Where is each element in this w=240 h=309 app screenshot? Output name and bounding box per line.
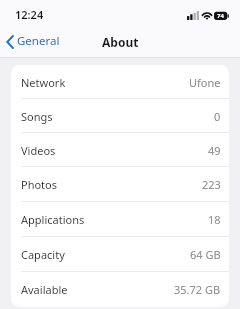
staticText: 0 (214, 109, 221, 124)
button[interactable]: Applications (11, 202, 229, 237)
staticText: General (17, 33, 60, 49)
staticText: Videos (21, 143, 56, 158)
button[interactable]: Available (11, 272, 229, 307)
staticText: 18 (208, 212, 221, 227)
staticText: Photos (21, 177, 58, 192)
button[interactable]: Capacity (11, 237, 229, 272)
staticText: 64 GB (190, 247, 221, 262)
staticText: 223 (202, 177, 221, 192)
button[interactable]: Network (11, 65, 229, 99)
staticText: Available (21, 282, 68, 297)
staticText: About (102, 34, 139, 50)
staticText: Ufone (189, 75, 221, 90)
staticText: 12:24 (15, 7, 44, 22)
staticText: 49 (208, 143, 221, 158)
staticText: 35.72 GB (174, 282, 221, 297)
button[interactable]: Songs (11, 99, 229, 133)
staticText: Network (21, 75, 66, 90)
button[interactable]: Back to General (0, 29, 68, 57)
staticText: 74 (217, 12, 224, 20)
other: Back to General (6, 35, 14, 49)
staticText: Songs (21, 109, 53, 124)
button[interactable]: Videos (11, 133, 229, 167)
button[interactable]: Photos (11, 167, 229, 202)
staticText: Applications (21, 212, 85, 227)
staticText: Capacity (21, 247, 65, 262)
